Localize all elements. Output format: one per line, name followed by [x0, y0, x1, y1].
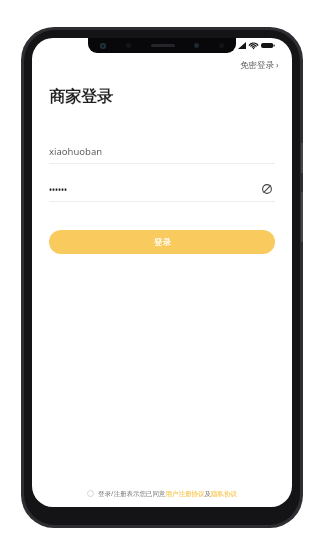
button[interactable]: ••••••: [49, 177, 275, 201]
button[interactable]: 登录/注册表示您已同意用户注册协议及隐私协议: [49, 489, 275, 498]
button[interactable]: Show password: [259, 181, 275, 197]
button[interactable]: xiaohuoban: [49, 139, 275, 163]
button[interactable]: 免密登录: [238, 57, 281, 73]
staticText: ••••••: [49, 184, 259, 195]
staticText: ›: [276, 59, 279, 71]
staticText: xiaohuoban: [49, 145, 103, 158]
staticText: 商家登录: [49, 87, 113, 107]
staticText: 免密登录: [240, 60, 274, 71]
button[interactable]: 登录: [49, 230, 275, 254]
staticText: 登录: [154, 237, 171, 248]
staticText: 登录/注册表示您已同意用户注册协议及隐私协议: [98, 489, 237, 498]
